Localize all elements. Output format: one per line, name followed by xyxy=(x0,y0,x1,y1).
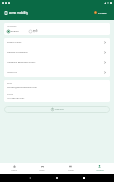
button[interactable]: Back xyxy=(26,174,34,182)
button[interactable]: English xyxy=(7,30,19,33)
button[interactable]: Rides xyxy=(28,165,56,172)
staticText: Home xyxy=(11,169,17,172)
staticText: हिन्दी xyxy=(33,30,38,33)
staticText: Wallet xyxy=(68,169,74,172)
staticText: Universal Reference Policy xyxy=(7,61,36,64)
staticText: Language xyxy=(7,25,17,28)
staticText: Rides xyxy=(39,169,45,172)
staticText: About Us xyxy=(7,71,17,74)
button[interactable]: About Us xyxy=(4,67,110,77)
button[interactable]: Home xyxy=(0,165,28,172)
staticText: zamo mobility xyxy=(9,11,28,15)
staticText: Account xyxy=(96,169,104,172)
staticText: English xyxy=(11,30,19,33)
staticText: Phone xyxy=(7,93,14,96)
button[interactable]: Universal Reference Policy xyxy=(4,57,110,67)
button[interactable]: Privacy Policy xyxy=(4,38,110,47)
button[interactable]: General Conditions xyxy=(4,47,110,57)
button[interactable]: Account xyxy=(85,165,114,172)
staticText: Log Out xyxy=(55,108,64,111)
staticText: General Conditions xyxy=(7,51,28,54)
staticText: contact@zamomobility.com xyxy=(7,86,37,89)
button[interactable]: 0 Coins xyxy=(93,10,108,15)
button[interactable]: Home xyxy=(53,174,61,182)
button[interactable]: Recents xyxy=(80,174,88,182)
button[interactable]: हिन्दी xyxy=(29,30,38,33)
button[interactable]: Log Out xyxy=(4,106,110,113)
staticText: Privacy Policy xyxy=(7,41,22,44)
staticText: +91 8861818181 xyxy=(7,97,25,100)
button[interactable]: Wallet xyxy=(56,165,85,172)
staticText: 0 Coins xyxy=(98,11,107,14)
staticText: Email xyxy=(7,82,13,85)
